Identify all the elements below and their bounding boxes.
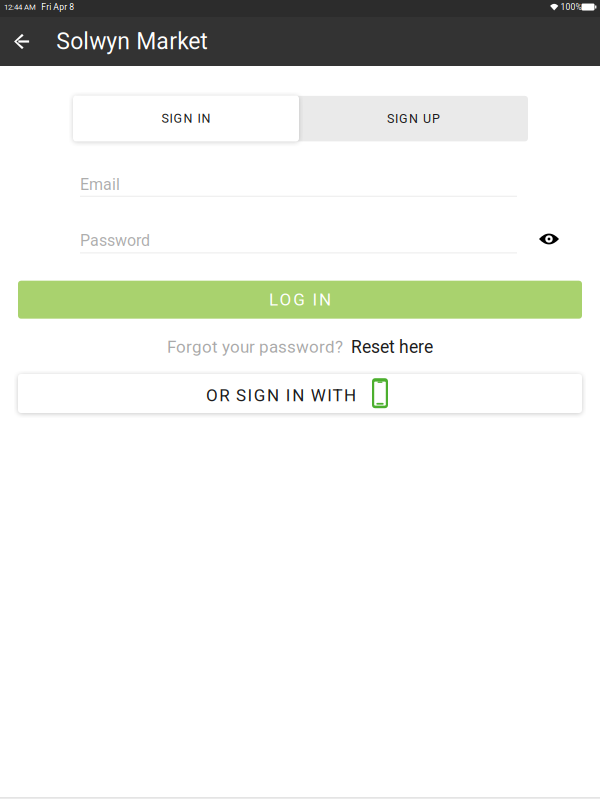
- staticText: Forgot your password?: [167, 337, 343, 357]
- staticText: Password: [80, 231, 150, 250]
- staticText: LOG IN: [269, 290, 331, 310]
- staticText: SIGN UP: [387, 111, 440, 126]
- button[interactable]: Back: [0, 19, 44, 63]
- button[interactable]: LOG IN: [18, 281, 582, 319]
- button[interactable]: SIGN IN: [73, 95, 299, 141]
- staticText: 100%: [560, 2, 581, 12]
- staticText: Solwyn Market: [56, 28, 208, 55]
- staticText: 12:44 AM: [4, 2, 36, 11]
- button[interactable]: Reset here: [351, 337, 433, 357]
- staticText: Reset here: [351, 337, 433, 357]
- staticText: Email: [80, 175, 120, 194]
- button[interactable]: OR SIGN IN WITH: [18, 374, 582, 413]
- button[interactable]: SIGN UP: [299, 96, 528, 141]
- button[interactable]: Show password: [530, 220, 568, 258]
- staticText: Fri Apr 8: [41, 2, 74, 12]
- staticText: SIGN IN: [161, 111, 210, 126]
- staticText: OR SIGN IN WITH: [206, 385, 356, 405]
